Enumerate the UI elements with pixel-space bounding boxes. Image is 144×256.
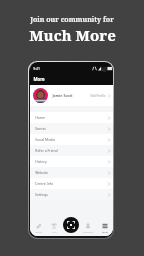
- staticText: Edit Profile: [90, 94, 106, 98]
- button[interactable]: Home: [30, 218, 46, 236]
- staticText: Much More: [29, 25, 116, 46]
- button[interactable]: Jamie Scott: [30, 85, 113, 106]
- button[interactable]: History: [30, 156, 113, 167]
- staticText: 9:41: [33, 66, 40, 71]
- staticText: Home: [35, 230, 42, 233]
- button[interactable]: More: [96, 218, 113, 236]
- staticText: Join our community for: [30, 15, 114, 25]
- staticText: Stories: [35, 126, 46, 131]
- staticText: Website: [35, 170, 48, 175]
- button[interactable]: Home: [30, 112, 113, 123]
- button[interactable]: Centre Info: [30, 178, 113, 189]
- button[interactable]: Social Media: [30, 134, 113, 145]
- button[interactable]: Rewards: [79, 218, 96, 236]
- staticText: Social Media: [35, 137, 55, 142]
- button[interactable]: Win: [46, 218, 62, 236]
- button[interactable]: Website: [30, 167, 113, 178]
- staticText: Home: [35, 115, 45, 120]
- button[interactable]: Scan QR code: [62, 218, 79, 236]
- staticText: More: [33, 76, 45, 82]
- button[interactable]: Stories: [30, 123, 113, 134]
- staticText: Settings: [35, 192, 48, 197]
- staticText: Rewards: [83, 230, 93, 233]
- staticText: Refer a Friend: [35, 148, 58, 153]
- staticText: Win: [52, 230, 57, 233]
- button[interactable]: Settings: [30, 189, 113, 200]
- staticText: More: [102, 230, 108, 233]
- staticText: Centre Info: [35, 181, 53, 186]
- staticText: History: [35, 159, 47, 164]
- staticText: Jamie Scott: [52, 93, 73, 98]
- button[interactable]: Refer a Friend: [30, 145, 113, 156]
